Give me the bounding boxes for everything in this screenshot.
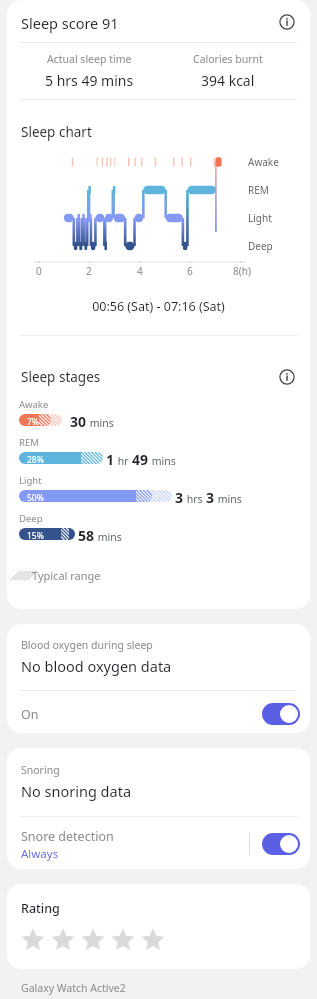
staticText: Light (19, 474, 42, 487)
button[interactable]: Rate 5 stars (138, 925, 168, 955)
staticText: 6 (187, 264, 193, 278)
staticText: 5 hrs 49 mins (45, 71, 134, 90)
staticText: Sleep stages (21, 368, 101, 386)
button[interactable]: Sleep score information (273, 8, 301, 36)
staticText: mins (149, 454, 176, 468)
staticText: 3 (175, 488, 184, 507)
button[interactable]: Rate 1 stars (18, 925, 48, 955)
staticText: Deep (19, 512, 43, 525)
button[interactable]: Rate 3 stars (78, 925, 108, 955)
staticText: No blood oxygen data (21, 656, 172, 676)
button[interactable]: Toggle on (262, 703, 300, 725)
staticText: Sleep score 91 (21, 13, 119, 33)
staticText: 394 kcal (201, 71, 255, 90)
staticText: Awake (248, 155, 279, 169)
staticText: 1 (106, 450, 115, 469)
staticText: 58 (78, 526, 95, 545)
staticText: 50% (27, 492, 44, 504)
staticText: 49 (132, 450, 149, 469)
staticText: 2 (86, 264, 92, 278)
staticText: 30 (70, 412, 87, 431)
staticText: On (21, 706, 39, 723)
button[interactable]: Toggle on (262, 833, 300, 855)
staticText: Awake (19, 398, 49, 411)
staticText: 15% (27, 530, 44, 542)
button[interactable]: Sleep stages information (273, 363, 301, 391)
staticText: REM (19, 436, 39, 449)
staticText: 0 (36, 264, 42, 278)
staticText: Typical range (32, 568, 101, 583)
staticText: Blood oxygen during sleep (21, 638, 153, 652)
staticText: Snoring (21, 763, 60, 777)
staticText: 7% (27, 416, 39, 428)
staticText: 28% (27, 454, 44, 466)
staticText: Sleep chart (21, 123, 92, 141)
staticText: 4 (137, 264, 143, 278)
button[interactable]: Rate 2 stars (48, 925, 78, 955)
staticText: Snore detection (21, 828, 114, 845)
staticText: Light (248, 211, 272, 225)
staticText: 00:56 (Sat) - 07:16 (Sat) (7, 298, 310, 315)
staticText: hr (115, 454, 132, 468)
staticText: Deep (248, 239, 273, 253)
staticText: 8(h) (233, 264, 251, 278)
staticText: mins (87, 416, 114, 430)
staticText: Actual sleep time (47, 52, 132, 66)
staticText: hrs (184, 492, 206, 506)
staticText: mins (215, 492, 242, 506)
staticText: Calories burnt (193, 52, 263, 66)
staticText: Always (21, 846, 59, 862)
staticText: mins (95, 530, 122, 544)
staticText: REM (248, 183, 269, 197)
staticText: Galaxy Watch Active2 (21, 981, 126, 995)
staticText: Rating (21, 900, 60, 917)
staticText: 3 (206, 488, 215, 507)
button[interactable]: Rate 4 stars (108, 925, 138, 955)
staticText: No snoring data (21, 781, 132, 801)
